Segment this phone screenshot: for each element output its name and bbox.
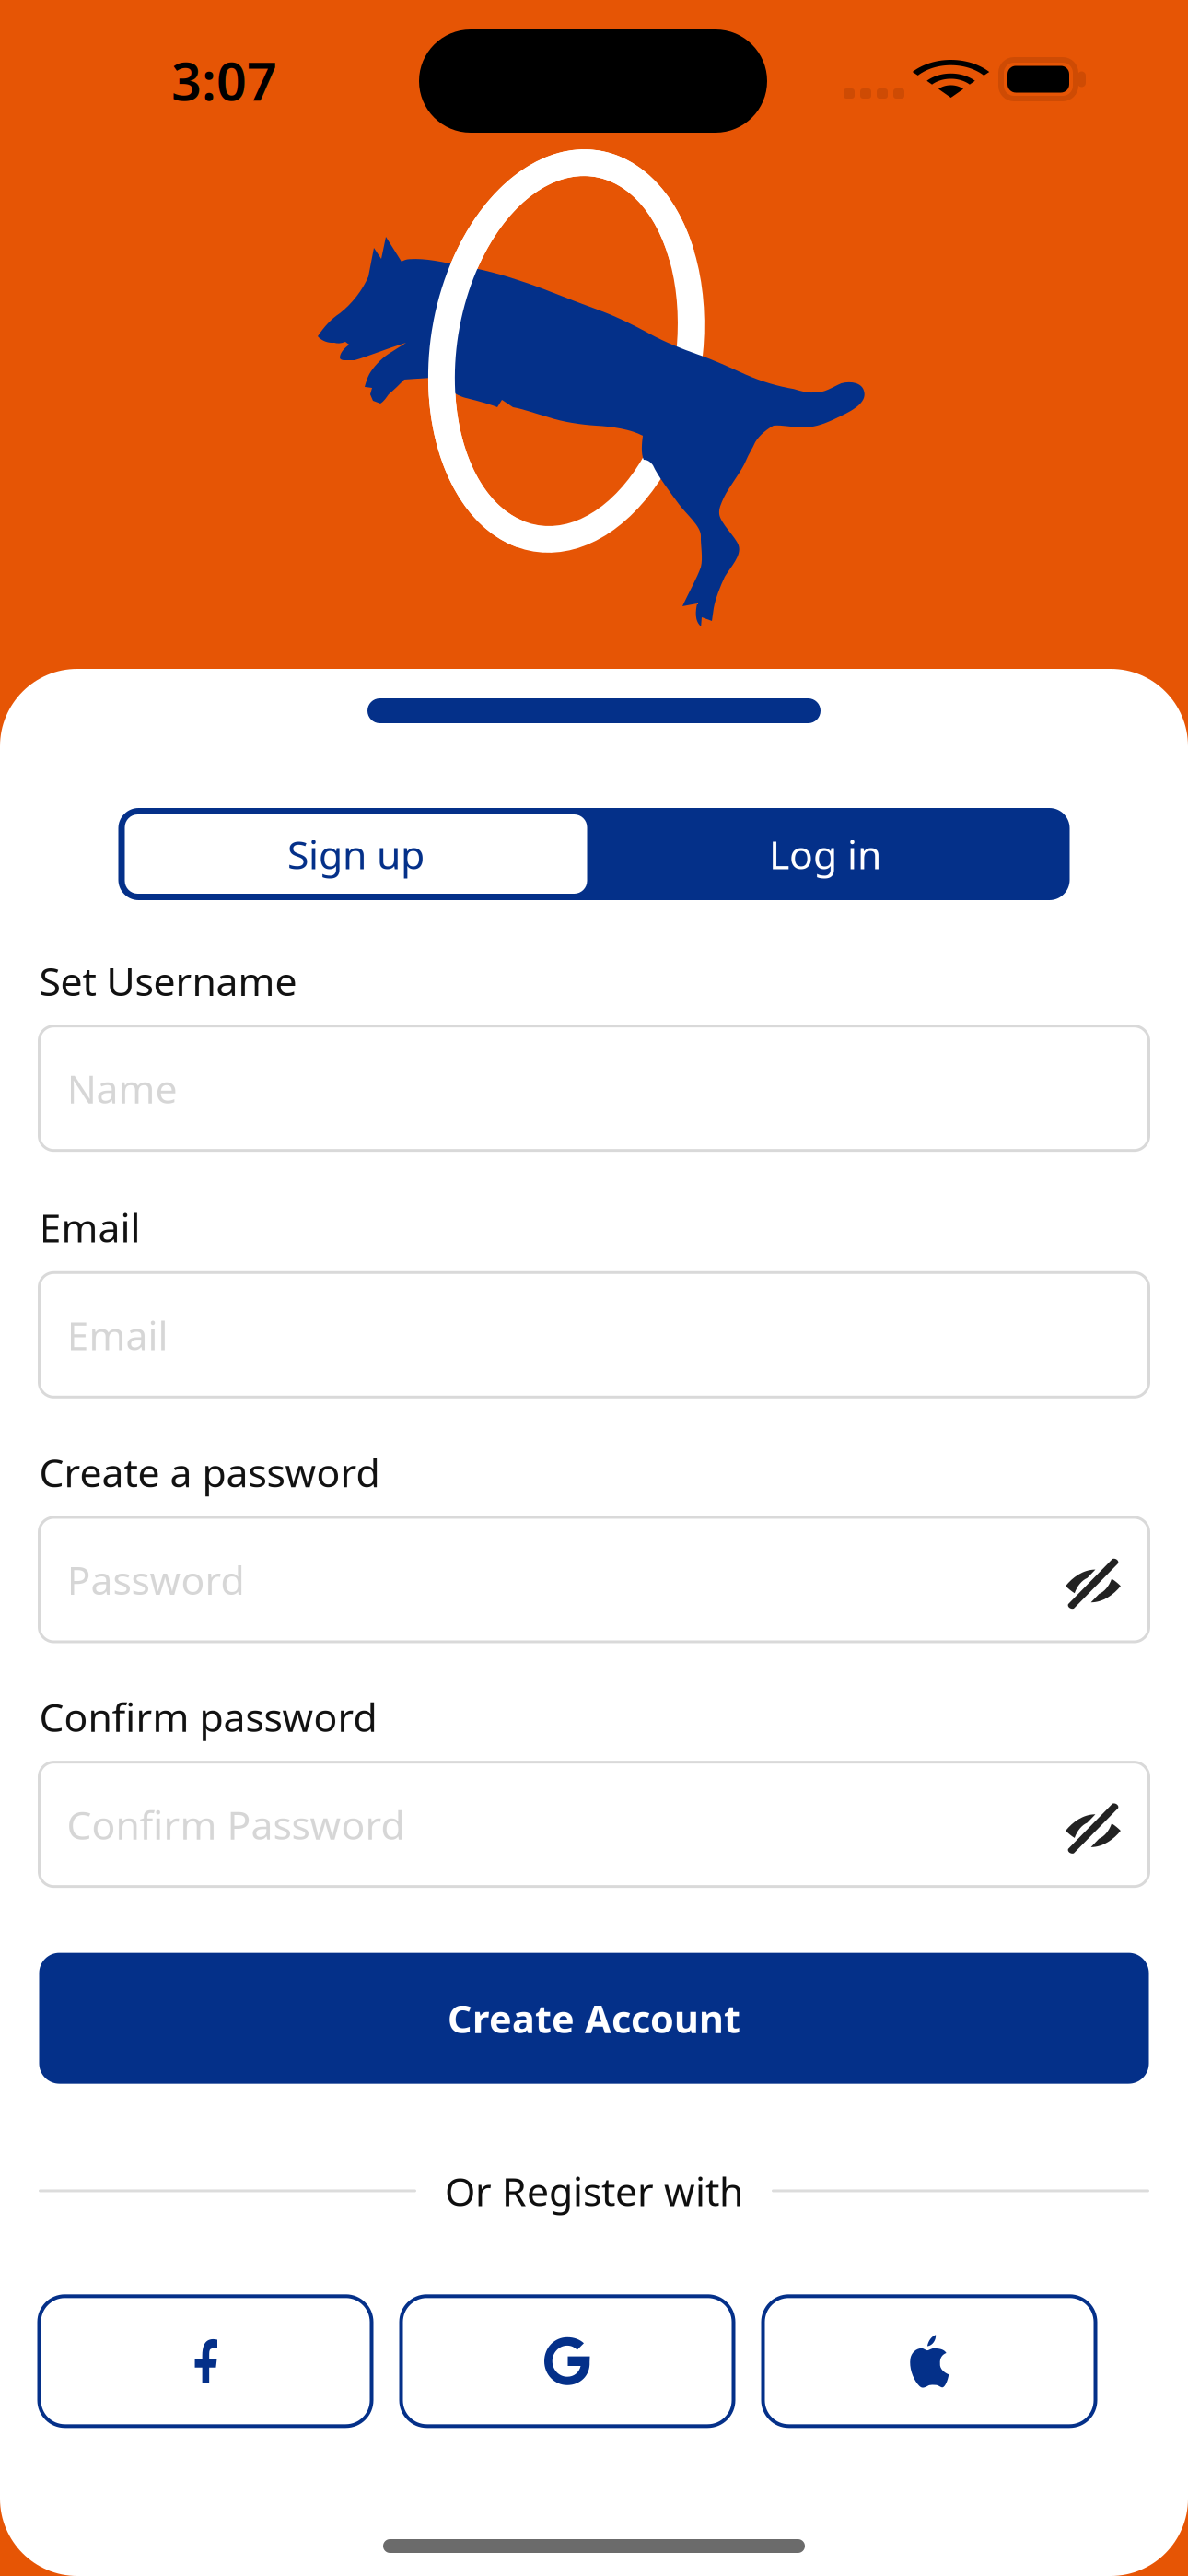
button[interactable]: Log in: [587, 814, 1063, 894]
staticText: Email: [39, 1201, 140, 1253]
staticText: Email: [67, 1309, 168, 1361]
button[interactable]: Show password: [1065, 1795, 1121, 1853]
staticText: Create a password: [39, 1446, 380, 1498]
staticText: 3:07: [171, 45, 277, 115]
staticText: Set Username: [39, 954, 297, 1007]
staticText: Name: [67, 1062, 177, 1114]
staticText: Create Account: [448, 1993, 740, 2044]
button[interactable]: Continue with Facebook: [39, 2296, 372, 2426]
staticText: Sign up: [287, 828, 425, 880]
staticText: Password: [67, 1554, 245, 1606]
button[interactable]: Show password: [1065, 1551, 1121, 1609]
staticText: Or Register with: [445, 2165, 743, 2217]
staticText: Log in: [769, 828, 881, 880]
button[interactable]: Continue with Google: [401, 2296, 734, 2426]
staticText: Confirm password: [39, 1691, 377, 1743]
staticText: Confirm Password: [67, 1798, 405, 1850]
button[interactable]: Continue with Apple: [763, 2296, 1095, 2426]
button[interactable]: Create Account: [39, 1953, 1149, 2084]
button[interactable]: Sign up: [125, 814, 587, 894]
